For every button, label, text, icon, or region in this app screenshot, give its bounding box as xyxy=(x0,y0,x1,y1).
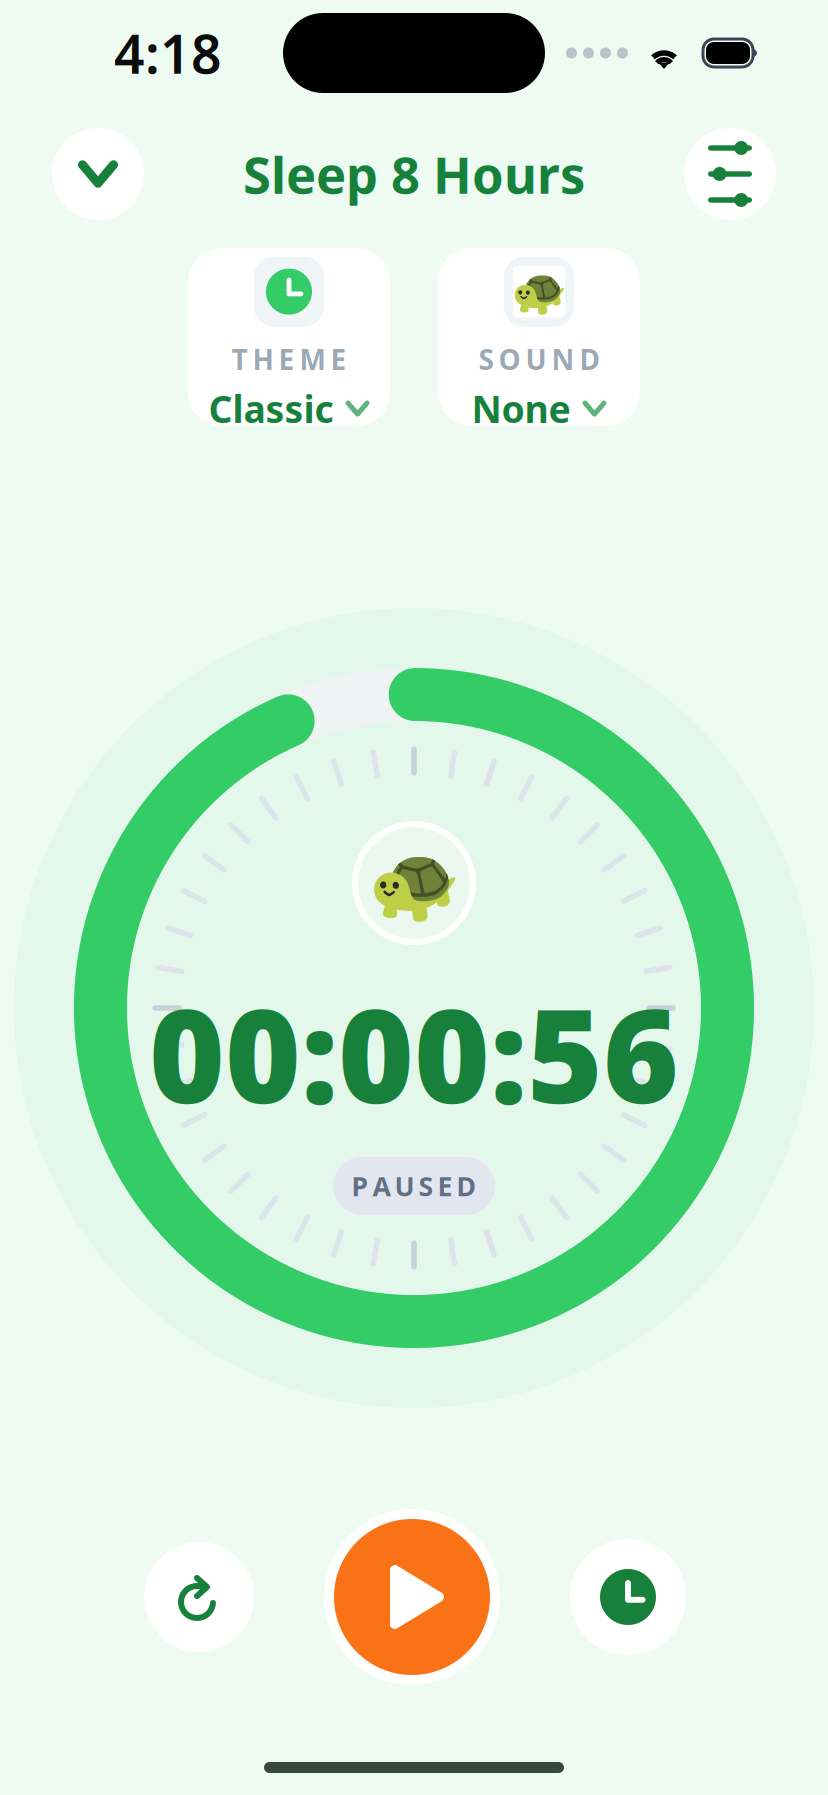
button[interactable]: Timer settings xyxy=(684,128,776,220)
staticText: 🐢 xyxy=(511,266,567,317)
button[interactable]: Collapse xyxy=(52,128,144,220)
staticText: 4:18 xyxy=(114,18,222,88)
staticText: Classic xyxy=(208,384,333,433)
staticText: None xyxy=(471,384,570,433)
button[interactable]: Start timer xyxy=(324,1509,500,1685)
staticText: 00:00:56 xyxy=(149,967,679,1139)
button[interactable]: Restart xyxy=(144,1542,254,1652)
button[interactable]: T H E M E xyxy=(188,248,390,426)
button[interactable]: 🐢 xyxy=(438,248,640,426)
staticText: S O U N D xyxy=(478,341,599,378)
staticText: P A U S E D xyxy=(351,1168,476,1204)
staticText: T H E M E xyxy=(231,341,346,378)
staticText: 🐢 xyxy=(367,840,460,926)
staticText: Sleep 8 Hours xyxy=(243,140,585,208)
button[interactable]: Timer history xyxy=(570,1539,686,1655)
